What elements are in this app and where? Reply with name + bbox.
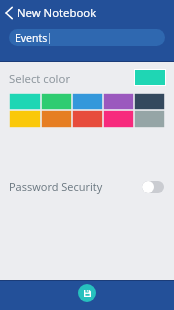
button[interactable] bbox=[103, 93, 134, 110]
staticText: Events bbox=[15, 31, 48, 45]
button[interactable] bbox=[72, 93, 103, 110]
button[interactable]: Save bbox=[78, 284, 96, 302]
button[interactable]: Password Security bbox=[0, 174, 174, 199]
button[interactable] bbox=[41, 93, 72, 110]
staticText: Password Security bbox=[9, 179, 103, 194]
button[interactable] bbox=[9, 110, 41, 128]
button[interactable]: Back bbox=[0, 0, 174, 26]
button[interactable] bbox=[72, 110, 103, 128]
staticText: Select color bbox=[9, 71, 71, 87]
button[interactable] bbox=[134, 110, 165, 128]
button[interactable] bbox=[103, 110, 134, 128]
button[interactable] bbox=[9, 93, 41, 110]
button[interactable] bbox=[134, 93, 165, 110]
staticText: New Notebook bbox=[17, 5, 97, 21]
button[interactable]: Events bbox=[9, 29, 165, 46]
other: Back bbox=[5, 7, 13, 19]
button[interactable] bbox=[41, 110, 72, 128]
